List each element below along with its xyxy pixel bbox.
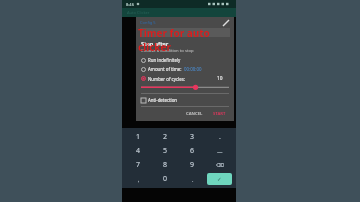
staticText: Amount of time: (148, 66, 182, 72)
button[interactable]: Edit (222, 19, 230, 27)
staticText: CANCEL (186, 111, 203, 117)
staticText: 9 (190, 160, 195, 170)
button[interactable]: Key 1 (126, 131, 151, 143)
staticText: Number of cycles: (148, 76, 185, 82)
staticText: Timer for auto (138, 26, 210, 40)
staticText: 00:00:00 (184, 66, 202, 72)
staticText: - (219, 134, 221, 141)
button[interactable]: Config 5 (140, 17, 230, 28)
staticText: 4 (136, 146, 141, 156)
staticText: Anti-detection (148, 97, 178, 103)
staticText: 8 (163, 160, 168, 170)
staticText: START (213, 111, 226, 117)
staticText: 0 (163, 174, 168, 184)
button[interactable]: Key — (207, 145, 232, 157)
staticText: Stop after (141, 40, 169, 47)
button[interactable]: Key . (180, 173, 205, 185)
staticText: 7 (136, 160, 141, 170)
staticText: 5 (163, 146, 168, 156)
button[interactable]: Key 8 (153, 159, 178, 171)
staticText: 2 (163, 132, 168, 142)
staticText: ⌫ (216, 162, 224, 168)
button[interactable]: Amount of time: (141, 66, 229, 72)
staticText: clicker (138, 40, 171, 54)
staticText: Auto Clicker (127, 10, 150, 15)
staticText: , (138, 176, 140, 183)
button[interactable]: Key 2 (153, 131, 178, 143)
staticText: Choose a condition to stop (141, 48, 194, 54)
staticText: . (192, 176, 194, 183)
button[interactable]: Key 0 (153, 173, 178, 185)
button[interactable]: Key 3 (180, 131, 205, 143)
button[interactable]: Key ✓ (207, 173, 232, 185)
staticText: 3 (190, 132, 195, 142)
staticText: — (217, 148, 223, 155)
staticText: 6 (190, 146, 195, 156)
button[interactable]: Key 9 (180, 159, 205, 171)
staticText: 10 (217, 75, 223, 82)
staticText: 1 (136, 132, 141, 142)
button[interactable]: Run indefinitely (141, 57, 229, 63)
staticText: Run indefinitely (148, 57, 181, 63)
staticText: 8:46 (126, 2, 134, 7)
button[interactable]: CANCEL (183, 110, 206, 118)
button[interactable]: START (210, 110, 229, 118)
staticText: ✓ (217, 176, 222, 182)
button[interactable]: Number of cycles: (141, 75, 229, 82)
button[interactable]: Key 6 (180, 145, 205, 157)
button[interactable]: Key , (126, 173, 151, 185)
button[interactable]: Key ⌫ (207, 159, 232, 171)
button[interactable]: Anti-detection (141, 97, 229, 103)
staticText: Config 5 (140, 20, 156, 25)
button[interactable]: Key 7 (126, 159, 151, 171)
button[interactable]: Key 5 (153, 145, 178, 157)
button[interactable]: Key 4 (126, 145, 151, 157)
button[interactable]: Key - (207, 131, 232, 143)
